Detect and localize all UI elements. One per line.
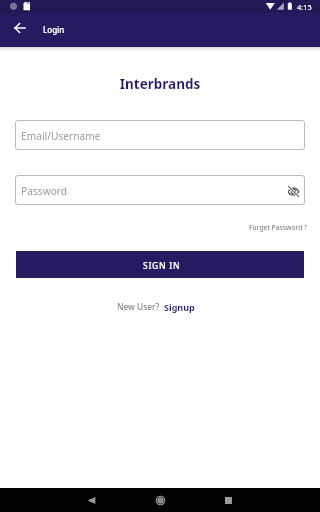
button[interactable]: Email/Username xyxy=(15,120,305,150)
button[interactable]: Home xyxy=(144,488,177,512)
button[interactable]: Password xyxy=(15,175,305,205)
staticText: Password xyxy=(21,184,68,198)
button[interactable]: Recents xyxy=(212,488,245,512)
button[interactable]: Signup xyxy=(164,301,195,313)
staticText: Interbrands xyxy=(0,75,320,93)
button[interactable]: Forget Password ? xyxy=(249,223,308,232)
button[interactable]: SIGN IN xyxy=(16,251,304,278)
button[interactable]: Toggle password visibility xyxy=(287,185,300,198)
staticText: New User? xyxy=(117,301,160,313)
staticText: 4:15 xyxy=(297,2,312,12)
staticText: Signup xyxy=(164,301,195,313)
staticText: SIGN IN xyxy=(143,260,181,272)
button[interactable]: Back xyxy=(75,488,108,512)
staticText: Forget Password ? xyxy=(249,223,308,232)
staticText: Email/Username xyxy=(21,129,101,143)
button[interactable]: Back xyxy=(0,13,42,47)
staticText: Login xyxy=(43,24,65,35)
